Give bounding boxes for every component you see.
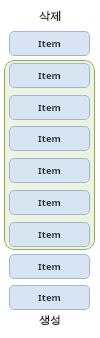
staticText: Item	[38, 291, 61, 304]
button[interactable]: Item	[9, 222, 90, 247]
button[interactable]: Item	[9, 254, 90, 279]
button[interactable]: Item	[9, 190, 90, 215]
button[interactable]: Item	[9, 158, 90, 183]
button[interactable]: Item	[9, 63, 90, 88]
button[interactable]: 삭제	[0, 7, 100, 25]
staticText: Item	[38, 132, 61, 145]
button[interactable]: Item	[9, 285, 90, 310]
staticText: Item	[38, 37, 61, 50]
staticText: 삭제	[39, 9, 61, 23]
staticText: Item	[38, 69, 61, 82]
staticText: Item	[38, 196, 61, 209]
button[interactable]: Item	[9, 126, 90, 151]
staticText: Item	[38, 101, 61, 114]
staticText: Item	[38, 164, 61, 177]
other: Selected group	[4, 60, 95, 250]
button[interactable]: Item	[9, 95, 90, 120]
staticText: Item	[38, 228, 61, 241]
button[interactable]: 생성	[0, 311, 100, 329]
staticText: 생성	[39, 313, 61, 327]
staticText: Item	[38, 260, 61, 273]
button[interactable]: Item	[9, 31, 90, 56]
